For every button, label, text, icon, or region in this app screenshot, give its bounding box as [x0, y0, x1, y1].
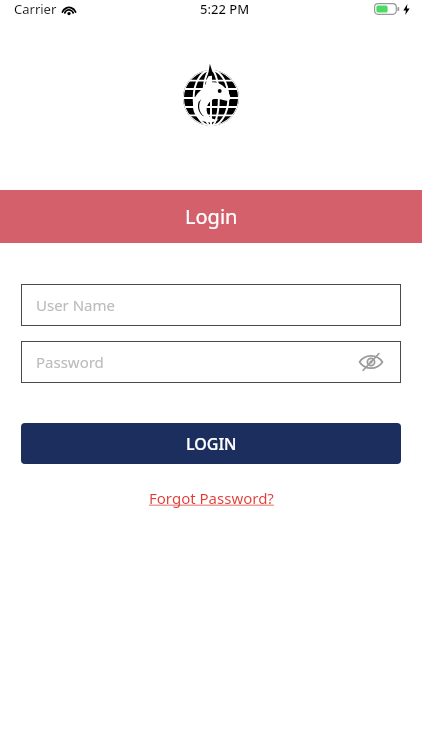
staticText: Carrier [14, 0, 57, 18]
button[interactable]: Password [21, 341, 401, 383]
button[interactable]: Show password [356, 350, 386, 374]
staticText: Forgot Password? [149, 488, 274, 508]
staticText: User Name [36, 295, 116, 315]
button[interactable]: LOGIN [21, 423, 401, 464]
staticText: Login [185, 203, 238, 230]
button[interactable]: Forgot Password? [145, 486, 278, 510]
staticText: Password [36, 352, 104, 372]
staticText: 5:22 PM [200, 0, 250, 18]
staticText: LOGIN [186, 433, 237, 455]
button[interactable]: User Name [21, 284, 401, 326]
